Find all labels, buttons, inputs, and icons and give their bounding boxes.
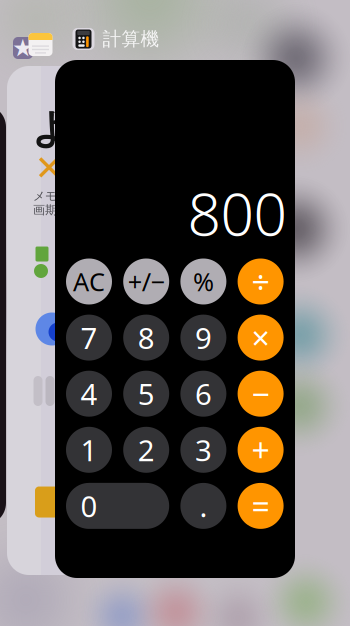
button[interactable]: 6 <box>180 371 226 417</box>
staticText: よ <box>31 104 72 153</box>
button[interactable]: 3 <box>180 427 226 473</box>
button[interactable]: 0 <box>66 483 169 529</box>
staticText: AC <box>73 265 105 298</box>
staticText: + <box>252 429 270 471</box>
button[interactable]: 4 <box>66 371 112 417</box>
button[interactable]: = <box>238 483 284 529</box>
button[interactable]: 2 <box>123 427 169 473</box>
staticText: × <box>252 316 270 359</box>
button[interactable]: 8 <box>123 315 169 361</box>
staticText: メモ <box>33 189 57 203</box>
button[interactable]: + <box>238 427 284 473</box>
staticText: +/− <box>128 265 165 298</box>
staticText: 7 <box>80 318 97 357</box>
staticText: 6 <box>195 374 212 413</box>
staticText: 計算機 <box>102 27 159 50</box>
button[interactable]: 5 <box>123 371 169 417</box>
staticText: 画期 <box>33 203 57 217</box>
staticText: 3 <box>195 430 212 469</box>
staticText: 0 <box>80 486 97 525</box>
button[interactable]: 7 <box>66 315 112 361</box>
staticText: 4 <box>80 374 97 413</box>
staticText: = <box>252 485 270 527</box>
button[interactable]: AC <box>66 258 112 304</box>
staticText: % <box>193 265 214 298</box>
staticText: 800 <box>187 174 286 252</box>
button[interactable]: ÷ <box>238 258 284 304</box>
staticText: − <box>252 372 270 415</box>
staticText: 5 <box>138 374 155 413</box>
staticText: 1 <box>80 430 97 469</box>
button[interactable]: +/− <box>123 258 169 304</box>
button[interactable]: × <box>238 315 284 361</box>
staticText: 8 <box>138 318 155 357</box>
staticText: ÷ <box>252 260 270 303</box>
staticText: 2 <box>138 430 155 469</box>
staticText: 9 <box>195 318 212 357</box>
staticText: . <box>199 486 207 525</box>
button[interactable]: . <box>180 483 226 529</box>
button[interactable]: 1 <box>66 427 112 473</box>
button[interactable]: − <box>238 371 284 417</box>
button[interactable]: 9 <box>180 315 226 361</box>
staticText: ✕ <box>34 148 63 188</box>
staticText: ★ <box>12 34 34 62</box>
button[interactable]: % <box>180 258 226 304</box>
